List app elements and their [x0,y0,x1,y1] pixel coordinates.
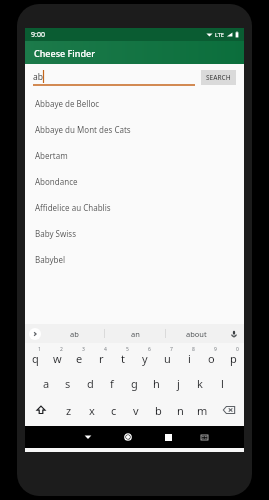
staticText: j [177,376,180,391]
staticText: u [164,351,171,366]
staticText: d [87,376,94,391]
staticText: 7 [170,346,173,353]
button[interactable]: 1 [25,343,46,370]
button[interactable]: 6 [134,343,156,370]
button[interactable]: Baby Swiss [25,220,244,246]
button[interactable]: m [191,397,213,423]
staticText: 9:00 [31,30,45,40]
button[interactable]: Back [68,426,108,448]
button[interactable]: l [211,370,233,397]
staticText: Abondance [35,176,78,187]
staticText: z [66,403,72,418]
button[interactable]: s [57,370,79,397]
button[interactable]: Expand suggestions [29,328,41,340]
button[interactable]: Affidelice au Chablis [25,194,244,220]
button[interactable]: Switch keyboard [188,426,220,448]
staticText: an [131,329,140,339]
staticText: 8 [192,346,195,353]
staticText: ab [33,71,43,83]
button[interactable]: 2 [46,343,68,370]
staticText: Baby Swiss [35,228,77,239]
staticText: w [53,351,62,366]
button[interactable]: Voice input [228,328,240,340]
button[interactable]: 5 [112,343,134,370]
button[interactable]: 9 [200,343,222,370]
staticText: a [43,376,50,391]
staticText: 5 [126,346,129,353]
button[interactable]: . [187,423,209,450]
button[interactable]: 3 [68,343,90,370]
button[interactable]: Enter [209,423,244,450]
button[interactable]: Backspace [213,397,244,423]
staticText: 2 [60,346,63,353]
button[interactable]: k [189,370,211,397]
staticText: 4 [104,346,107,353]
staticText: n [177,403,184,418]
staticText: m [197,403,208,418]
button[interactable]: c [103,397,125,423]
button[interactable]: Home [108,426,148,448]
staticText: c [111,403,117,418]
button[interactable]: Abbaye du Mont des Cats [25,116,244,142]
staticText: Abbaye de Belloc [35,98,100,109]
button[interactable]: j [167,370,189,397]
staticText: h [153,376,160,391]
button[interactable]: SEARCH [201,70,236,85]
staticText: about [186,329,207,339]
staticText: t [121,351,125,366]
button[interactable]: n [169,397,191,423]
staticText: v [133,403,139,418]
button[interactable]: x [80,397,103,423]
button[interactable]: Shift [25,397,57,423]
button[interactable]: d [79,370,101,397]
button[interactable]: ab [33,68,195,86]
staticText: LTE [215,31,224,38]
button[interactable]: 7 [156,343,178,370]
staticText: k [197,376,203,391]
staticText: b [155,403,162,418]
staticText: Abbaye du Mont des Cats [35,124,131,135]
button[interactable]: Abondance [25,168,244,194]
staticText: l [221,376,224,391]
button[interactable]: v [125,397,147,423]
staticText: 3 [82,346,85,353]
button[interactable]: z [57,397,80,423]
staticText: 0 [236,346,239,353]
button[interactable]: Recents [148,426,188,448]
staticText: 6 [148,346,151,353]
staticText: Abertam [35,150,68,161]
button[interactable]: Babybel [25,246,244,272]
button[interactable]: Change language [76,423,96,450]
button[interactable]: Abbaye de Belloc [25,90,244,116]
staticText: 9 [214,346,217,353]
button[interactable]: 8 [178,343,200,370]
button[interactable]: ?123 [25,423,57,450]
button[interactable]: EN · FR [96,428,187,445]
button[interactable]: b [147,397,169,423]
button[interactable]: 0 [222,343,244,370]
staticText: y [142,351,148,366]
staticText: f [110,376,114,391]
staticText: p [230,351,237,366]
button[interactable]: ☺ [57,423,76,450]
staticText: r [99,351,104,366]
staticText: ab [70,329,79,339]
staticText: s [65,376,71,391]
button[interactable]: h [145,370,167,397]
button[interactable]: f [101,370,123,397]
button[interactable]: an [105,324,165,343]
button[interactable]: a [36,370,57,397]
staticText: Babybel [35,254,66,265]
button[interactable]: about [166,324,226,343]
button[interactable]: Abertam [25,142,244,168]
staticText: Cheese Finder [34,47,95,59]
staticText: SEARCH [206,73,231,82]
button[interactable]: 4 [90,343,112,370]
button[interactable]: g [123,370,145,397]
button[interactable]: ab [44,324,104,343]
staticText: o [208,351,215,366]
